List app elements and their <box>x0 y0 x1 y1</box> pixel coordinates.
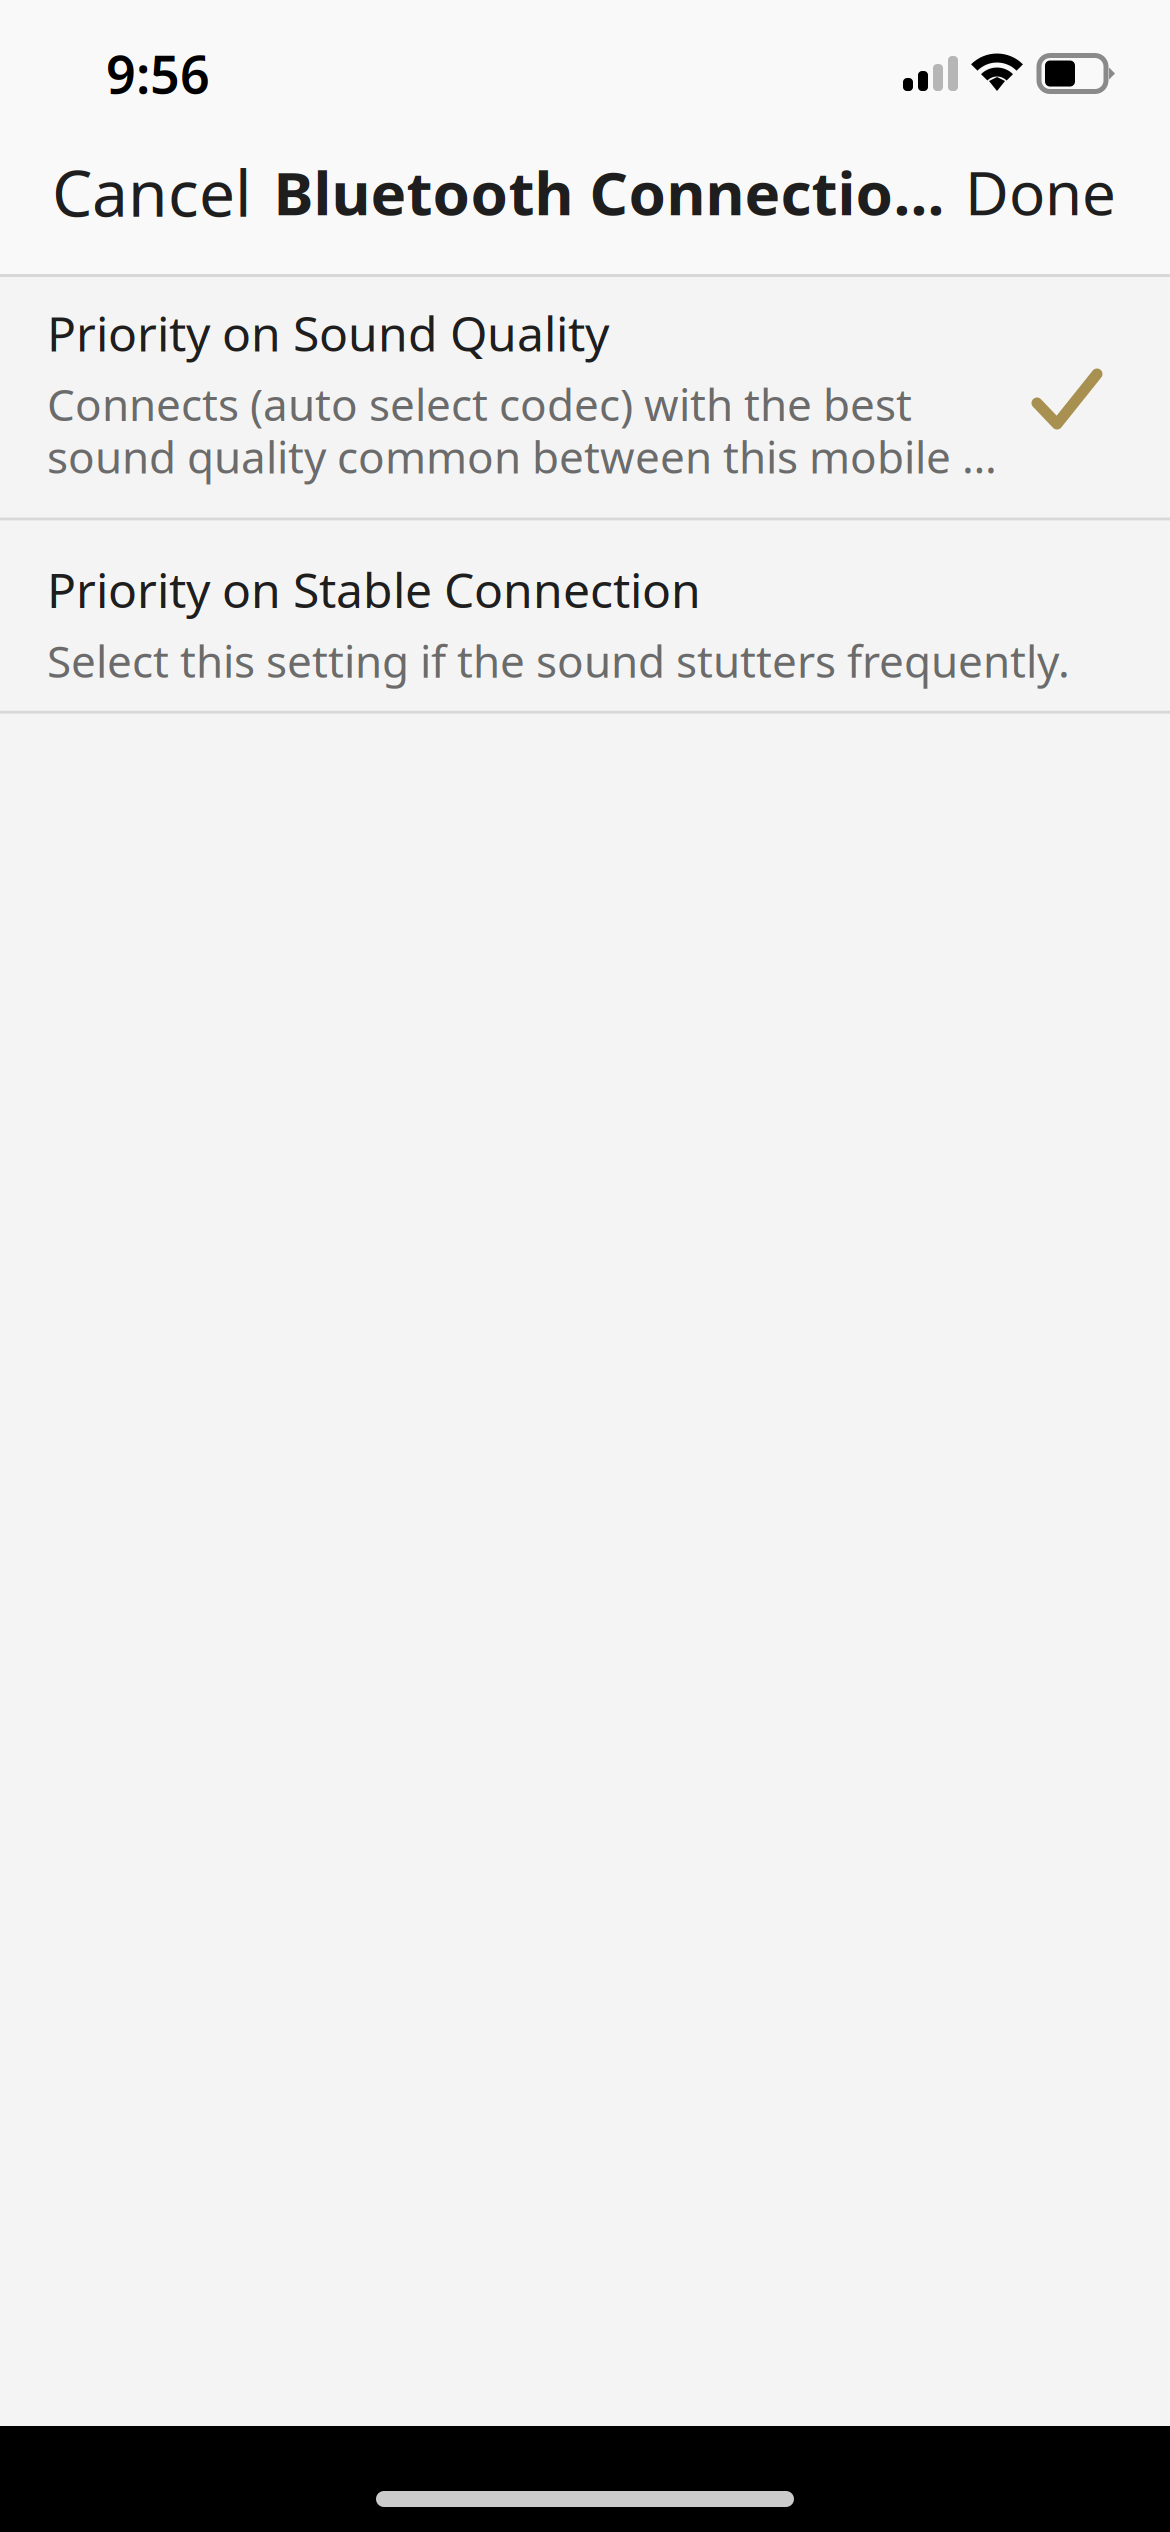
button[interactable]: Done <box>957 130 1124 254</box>
staticText: Cancel <box>52 149 252 234</box>
button[interactable]: Priority on Sound Quality <box>0 277 1170 518</box>
staticText: Priority on Stable Connection <box>47 558 701 621</box>
staticText: Bluetooth Connectio... <box>273 152 944 232</box>
staticText: Select this setting if the sound stutter… <box>47 631 1070 690</box>
staticText: Done <box>965 152 1116 232</box>
staticText: Priority on Sound Quality <box>47 301 609 365</box>
staticText: 9:56 <box>106 39 210 108</box>
button[interactable]: Priority on Stable Connection <box>0 521 1170 711</box>
staticText: Connects (auto select codec) with the be… <box>47 375 1012 486</box>
button[interactable]: Cancel <box>44 127 260 256</box>
